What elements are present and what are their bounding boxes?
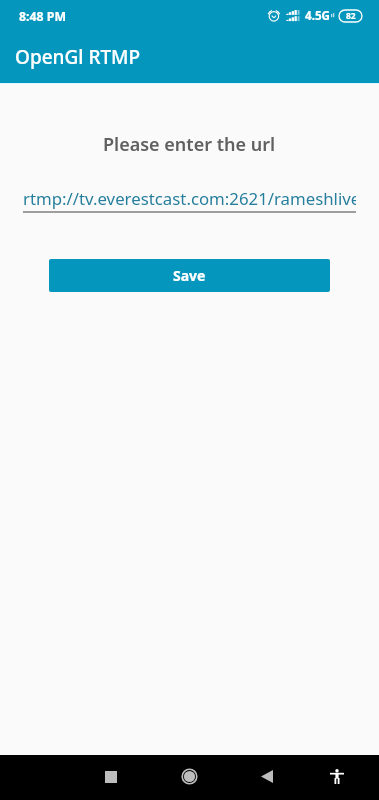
staticText: OpenGl RTMP (15, 44, 141, 70)
button[interactable]: Home (171, 758, 208, 795)
staticText: 4.5G (305, 8, 330, 24)
staticText: Please enter the url (103, 132, 276, 157)
button[interactable]: Recents (92, 758, 129, 795)
staticText: Save (173, 266, 206, 285)
button[interactable]: Save (49, 259, 330, 292)
staticText: rtmp://tv.everestcast.com:2621/rameshliv… (23, 187, 356, 210)
button[interactable]: Back (248, 758, 285, 795)
staticText: 8:48 PM (19, 8, 66, 25)
staticText: 82 (346, 10, 356, 22)
button[interactable]: rtmp://tv.everestcast.com:2621/rameshliv… (0, 187, 379, 213)
button[interactable]: Accessibility (318, 758, 355, 795)
